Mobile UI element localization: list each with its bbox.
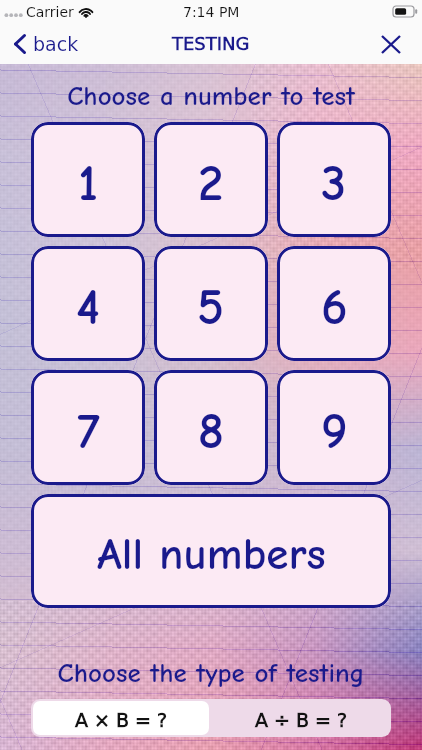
staticText: Choose the type of testing [0,658,422,689]
button[interactable]: 9 [277,370,391,485]
button[interactable]: 3 [277,122,391,237]
button[interactable]: All numbers [31,494,391,608]
staticText: 4 [76,278,100,337]
button[interactable]: A × B = ? [33,701,209,735]
button[interactable]: 1 [31,122,145,237]
button[interactable]: 7 [31,370,145,485]
button[interactable]: 6 [277,246,391,361]
staticText: 3 [321,154,347,213]
staticText: TESTING [172,33,250,54]
staticText: 8 [198,402,225,461]
staticText: 7:14 PM [183,4,240,20]
button[interactable]: 8 [154,370,268,485]
button[interactable]: Close [374,27,408,61]
button[interactable]: back [0,27,89,61]
staticText: A ÷ B = ? [255,709,348,731]
button[interactable]: 2 [154,122,268,237]
staticText: 2 [198,154,224,213]
staticText: Carrier [26,4,74,20]
button[interactable]: 5 [154,246,268,361]
staticText: 9 [321,402,348,461]
staticText: back [33,33,79,55]
button[interactable]: A ÷ B = ? [211,699,391,737]
staticText: 1 [78,154,99,213]
staticText: All numbers [97,528,326,580]
staticText: 6 [321,278,348,337]
staticText: 7 [77,402,100,461]
staticText: 5 [197,278,225,337]
button[interactable]: 4 [31,246,145,361]
staticText: A × B = ? [75,709,168,731]
staticText: Choose a number to test [0,81,422,112]
